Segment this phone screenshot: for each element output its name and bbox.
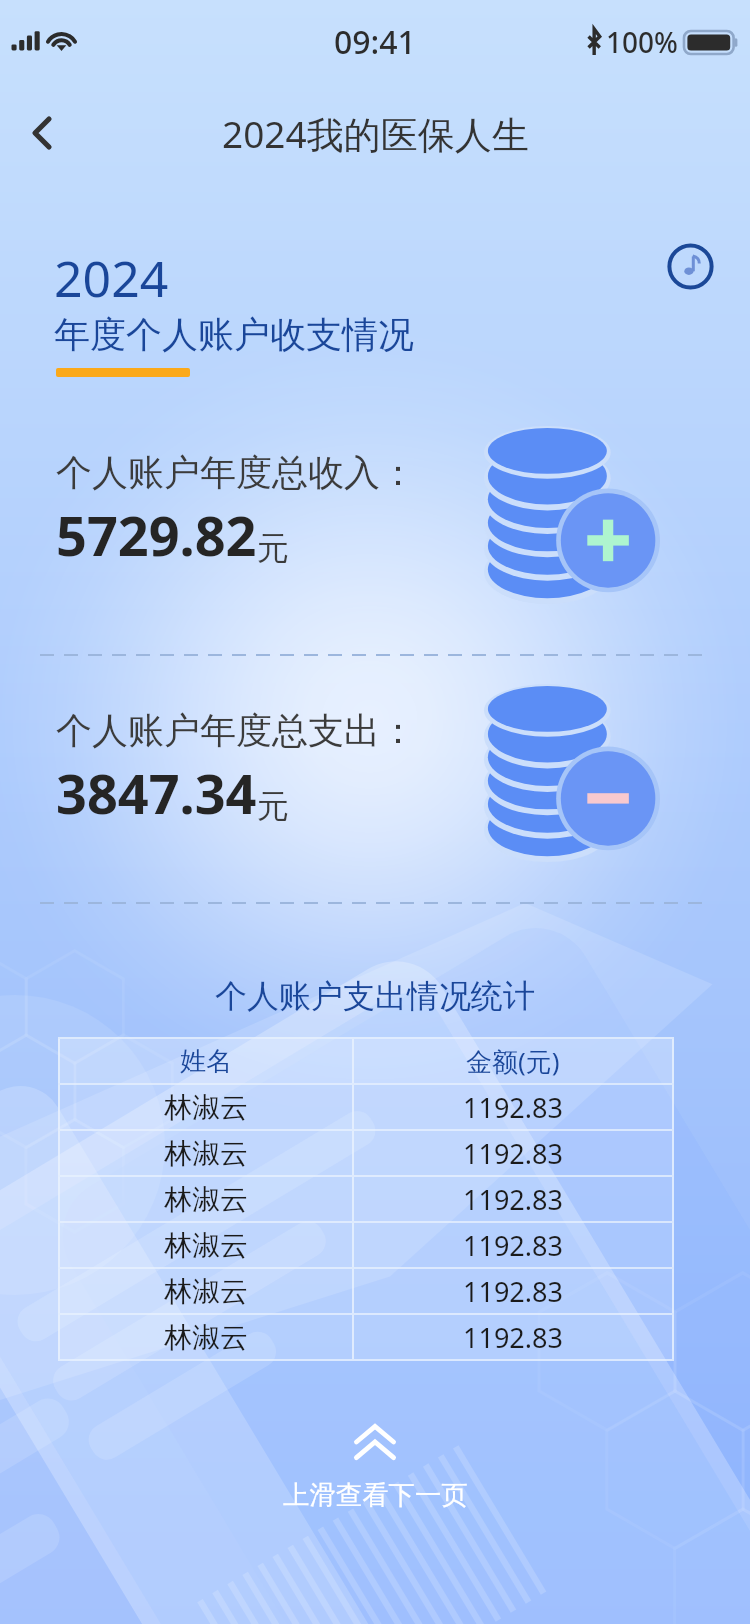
staticText: 1192.83 [463,1135,563,1172]
button[interactable]: 林淑云 [58,1315,674,1359]
button[interactable]: 林淑云 [58,1177,674,1221]
staticText: 林淑云 [164,1228,248,1263]
staticText: 1192.83 [463,1181,563,1218]
staticText: 元 [257,528,289,568]
staticText: 金额(元) [466,1043,560,1079]
staticText: 1192.83 [463,1089,563,1126]
staticText: 林淑云 [164,1090,248,1125]
staticText: 5729.82 [56,498,257,572]
staticText: 姓名 [180,1045,232,1078]
staticText: 100% [606,23,678,61]
staticText: 林淑云 [164,1182,248,1217]
staticText: 个人账户支出情况统计 [0,976,750,1016]
staticText: 个人账户年度总支出： [56,708,416,753]
button[interactable]: 林淑云 [58,1223,674,1267]
staticText: 年度个人账户收支情况 [54,312,414,357]
staticText: 1192.83 [463,1273,563,1310]
staticText: 2024 [54,244,169,312]
staticText: 2024我的医保人生 [222,108,529,159]
staticText: 林淑云 [164,1136,248,1171]
staticText: 3847.34 [56,756,257,830]
staticText: 个人账户年度总收入： [56,450,416,495]
button[interactable]: 林淑云 [58,1269,674,1313]
staticText: 元 [257,786,289,826]
button[interactable]: 林淑云 [58,1131,674,1175]
staticText: 1192.83 [463,1227,563,1264]
staticText: 林淑云 [164,1274,248,1309]
staticText: 上滑查看下一页 [283,1479,468,1512]
button[interactable]: 林淑云 [58,1085,674,1129]
staticText: 林淑云 [164,1320,248,1355]
staticText: 1192.83 [463,1319,563,1356]
button[interactable]: Music [656,232,724,300]
button[interactable]: Back [0,91,84,175]
button[interactable]: 姓名 [58,1039,674,1083]
staticText: 09:41 [334,20,416,64]
